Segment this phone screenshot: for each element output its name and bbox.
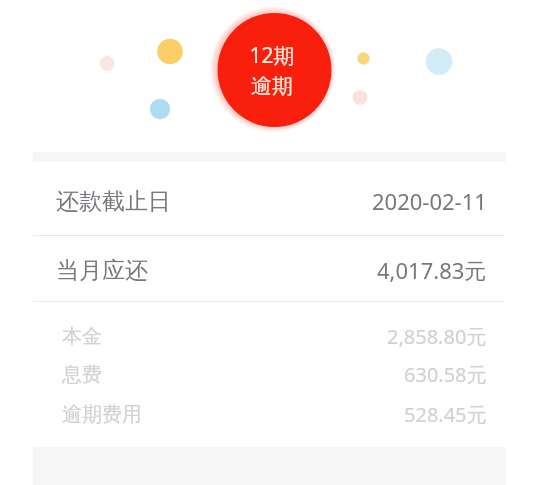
staticText: 逾期费用 — [62, 402, 142, 427]
button[interactable]: 12期 逾期 — [212, 41, 332, 99]
button[interactable]: 本金 — [33, 320, 505, 352]
staticText: 630.58元 — [404, 361, 487, 388]
staticText: 4,017.83元 — [377, 255, 487, 285]
staticText: 逾期 — [251, 73, 293, 99]
staticText: 2,858.80元 — [387, 323, 487, 350]
button[interactable]: 还款截止日 — [33, 183, 505, 219]
staticText: 还款截止日 — [56, 187, 171, 216]
staticText: 12期 — [249, 41, 295, 70]
staticText: 528.45元 — [404, 401, 487, 428]
button[interactable]: 逾期费用 — [33, 398, 505, 430]
staticText: 当月应还 — [56, 256, 148, 285]
button[interactable]: 当月应还 — [33, 252, 505, 288]
button[interactable]: 息费 — [33, 358, 505, 390]
staticText: 本金 — [62, 324, 102, 349]
staticText: 2020-02-11 — [372, 186, 487, 216]
staticText: 息费 — [62, 362, 102, 387]
